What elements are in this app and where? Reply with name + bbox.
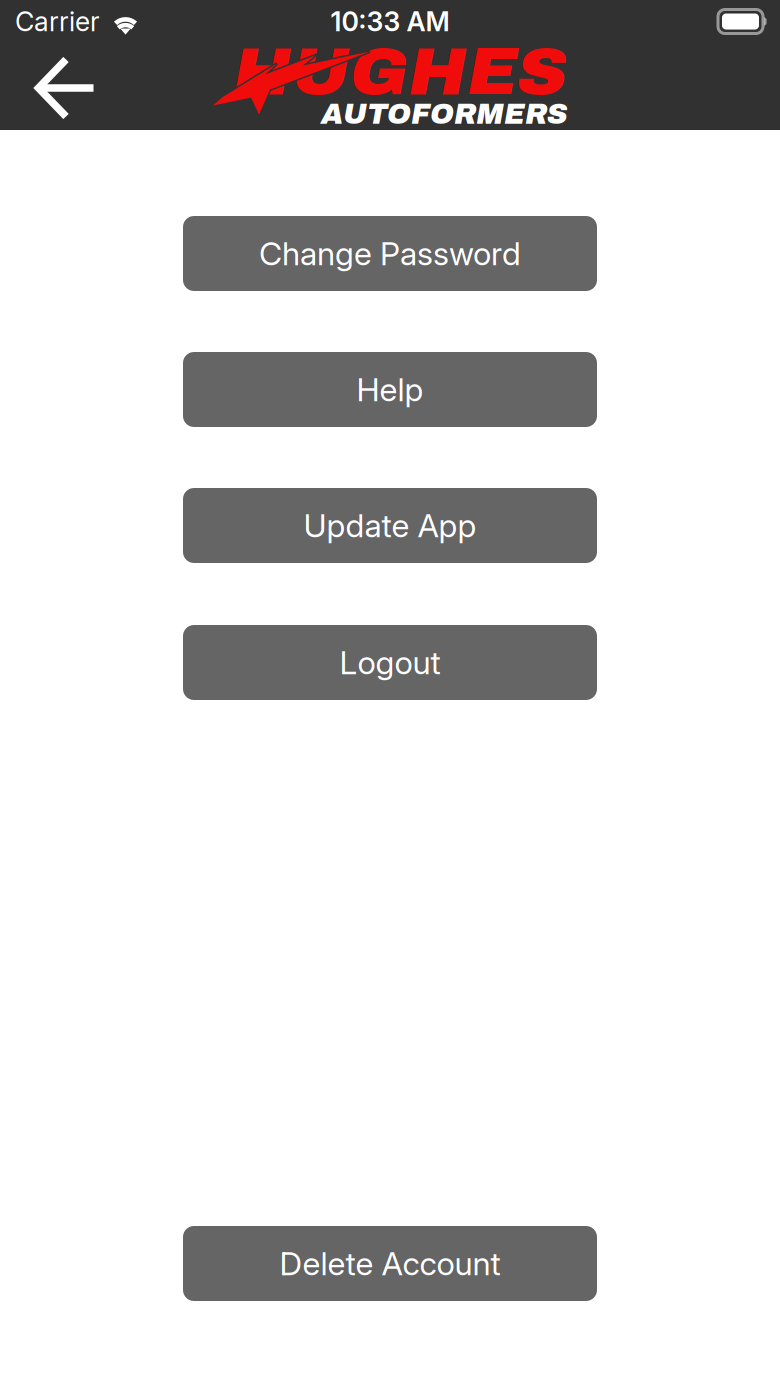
staticText: Change Password	[259, 234, 521, 273]
staticText: AUTOFORMERS	[321, 98, 568, 130]
staticText: Update App	[303, 506, 476, 545]
button[interactable]: Logout	[183, 625, 597, 700]
staticText: Carrier	[15, 5, 100, 38]
staticText: Help	[356, 370, 423, 409]
staticText: Delete Account	[279, 1244, 500, 1283]
staticText: HUGHES	[240, 35, 560, 108]
staticText: Logout	[339, 643, 440, 682]
staticText: 10:33 AM	[330, 5, 449, 38]
button[interactable]: Delete Account	[183, 1226, 597, 1301]
button[interactable]: Back	[0, 41, 114, 131]
button[interactable]: Help	[183, 352, 597, 427]
button[interactable]: Update App	[183, 488, 597, 563]
button[interactable]: Change Password	[183, 216, 597, 291]
